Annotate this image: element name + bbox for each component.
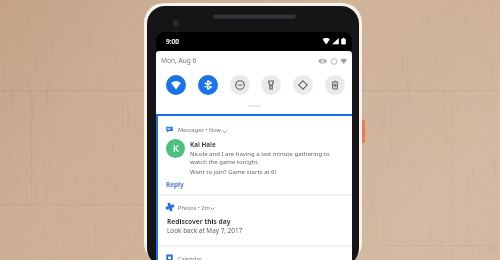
staticText: Look back at May 7, 2017 xyxy=(167,226,243,235)
staticText: Rediscover this day xyxy=(167,217,231,226)
staticText: Messages • Now xyxy=(178,126,221,134)
staticText: Reply xyxy=(166,180,184,189)
button[interactable]: Photos • 2m xyxy=(158,196,352,245)
staticText: Nicole and I are having a last minute ga… xyxy=(190,150,333,165)
button[interactable]: Battery saver xyxy=(325,75,345,95)
staticText: K xyxy=(173,142,179,155)
button[interactable]: Bluetooth xyxy=(198,75,218,95)
staticText: Photos • 2m xyxy=(178,204,210,212)
staticText: Want to join? Game starts at 6! xyxy=(190,168,277,176)
staticText: Calendar xyxy=(178,255,202,260)
staticText: Kai Hale xyxy=(190,140,216,149)
button[interactable]: Do not disturb xyxy=(230,75,250,95)
button[interactable]: Wi-Fi xyxy=(166,75,186,95)
button[interactable]: Flashlight xyxy=(261,75,281,95)
staticText: 9:00 xyxy=(166,37,180,46)
staticText: Mon, Aug 6 xyxy=(161,56,197,65)
button[interactable]: Auto-rotate xyxy=(293,75,313,95)
button[interactable]: Messages • Now xyxy=(158,116,352,194)
button[interactable]: Calendar xyxy=(158,246,352,260)
button[interactable]: Reply xyxy=(163,178,187,191)
